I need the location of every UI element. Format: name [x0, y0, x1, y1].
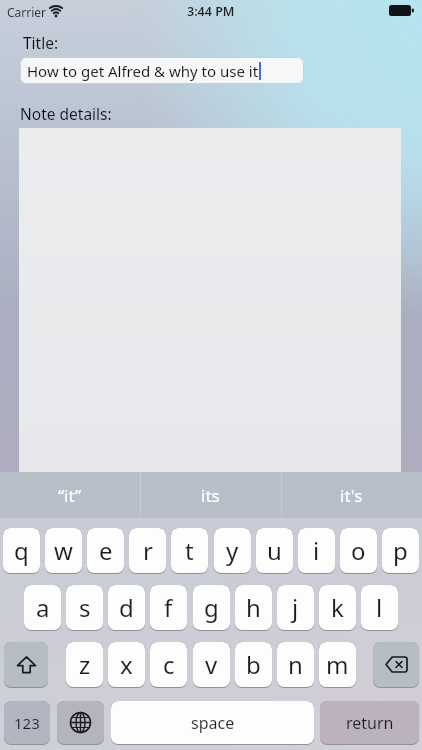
button[interactable]: l [361, 585, 398, 631]
button[interactable]: u [256, 528, 293, 574]
button[interactable]: s [66, 585, 103, 631]
staticText: c [163, 648, 175, 681]
button[interactable]: 123 [4, 701, 50, 745]
staticText: Title: [23, 32, 59, 53]
button[interactable]: How to get Alfred & why to use it [20, 57, 304, 84]
staticText: return [346, 712, 394, 734]
button[interactable]: return [320, 701, 419, 745]
button[interactable]: d [108, 585, 145, 631]
staticText: “it” [58, 484, 82, 507]
staticText: b [246, 648, 261, 681]
button[interactable]: m [319, 642, 356, 688]
staticText: a [36, 591, 50, 624]
staticText: w [54, 534, 73, 567]
staticText: h [246, 591, 261, 624]
staticText: 123 [14, 713, 40, 733]
staticText: i [313, 534, 320, 567]
button[interactable]: space [111, 701, 314, 745]
staticText: q [14, 534, 29, 567]
staticText: p [393, 534, 408, 567]
button[interactable]: z [66, 642, 103, 688]
button[interactable]: b [235, 642, 272, 688]
button[interactable]: j [277, 585, 314, 631]
staticText: it's [340, 484, 363, 507]
button[interactable]: e [87, 528, 124, 574]
staticText: Carrier [7, 4, 47, 20]
staticText: Note details: [20, 103, 112, 124]
button[interactable]: a [24, 585, 61, 631]
staticText: l [376, 591, 383, 624]
staticText: y [226, 534, 239, 567]
staticText: s [79, 591, 91, 624]
button[interactable]: f [150, 585, 187, 631]
button[interactable]: t [171, 528, 208, 574]
button[interactable]: “it” [0, 472, 140, 518]
staticText: u [267, 534, 282, 567]
staticText: x [120, 648, 133, 681]
button[interactable]: y [214, 528, 251, 574]
button[interactable]: q [3, 528, 40, 574]
staticText: n [288, 648, 303, 681]
button[interactable] [57, 701, 104, 745]
button[interactable]: its [140, 472, 281, 518]
button[interactable] [4, 642, 48, 688]
staticText: e [99, 534, 113, 567]
staticText: o [351, 534, 366, 567]
button[interactable]: o [340, 528, 377, 574]
button[interactable]: it's [281, 472, 422, 518]
staticText: How to get Alfred & why to use it [27, 61, 259, 81]
staticText: j [292, 591, 299, 624]
staticText: its [201, 484, 220, 507]
staticText: z [79, 648, 91, 681]
button[interactable]: h [235, 585, 272, 631]
button[interactable]: c [150, 642, 187, 688]
staticText: 3:44 PM [187, 3, 235, 20]
button[interactable]: g [193, 585, 230, 631]
staticText: k [331, 591, 344, 624]
staticText: f [164, 591, 173, 624]
staticText: m [326, 648, 349, 681]
button[interactable]: i [298, 528, 335, 574]
button[interactable] [373, 642, 419, 688]
button[interactable]: r [129, 528, 166, 574]
staticText: space [191, 712, 235, 734]
button[interactable]: v [193, 642, 230, 688]
staticText: v [205, 648, 218, 681]
staticText: t [185, 534, 194, 567]
button[interactable]: n [277, 642, 314, 688]
staticText: d [119, 591, 134, 624]
button[interactable]: k [319, 585, 356, 631]
staticText: g [204, 591, 219, 624]
staticText: r [143, 534, 153, 567]
button[interactable]: x [108, 642, 145, 688]
button[interactable]: w [45, 528, 82, 574]
button[interactable]: p [382, 528, 419, 574]
